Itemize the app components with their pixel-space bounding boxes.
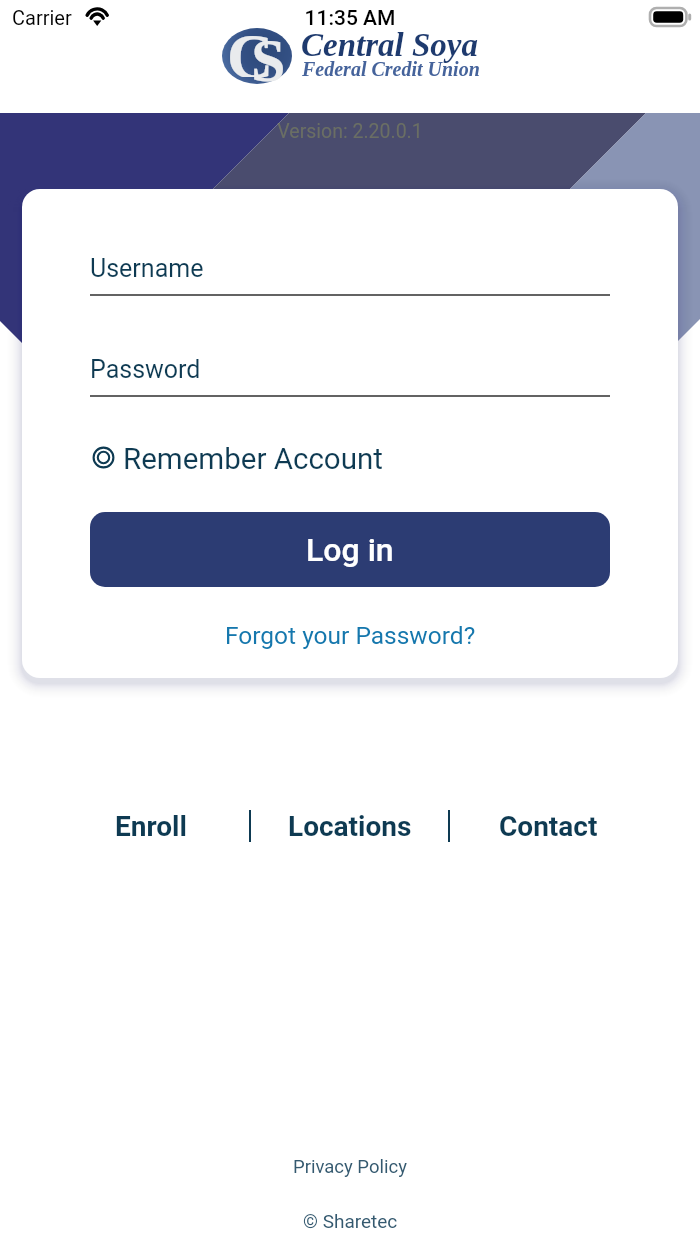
staticText: Enroll bbox=[115, 810, 187, 843]
button[interactable]: Remember Account bbox=[91, 442, 376, 477]
staticText: Version: 2.20.0.1 bbox=[0, 120, 700, 143]
staticText: Password bbox=[90, 355, 201, 384]
staticText: © Sharetec bbox=[303, 1210, 398, 1232]
staticText: Remember Account bbox=[123, 442, 383, 477]
staticText: Log in bbox=[306, 531, 394, 569]
staticText: Locations bbox=[288, 810, 412, 843]
other: Wi-Fi bbox=[82, 5, 113, 28]
button[interactable]: Password bbox=[90, 355, 610, 397]
staticText: Contact bbox=[499, 810, 598, 843]
staticText: Forgot your Password? bbox=[225, 621, 476, 650]
staticText: Privacy Policy bbox=[293, 1156, 407, 1178]
staticText: C bbox=[227, 21, 274, 77]
button[interactable]: Log in bbox=[90, 512, 610, 587]
button[interactable]: Forgot your Password? bbox=[217, 617, 484, 654]
staticText: Username bbox=[90, 254, 204, 283]
button[interactable]: Contact bbox=[450, 808, 647, 844]
button[interactable]: Enroll bbox=[53, 808, 249, 844]
button[interactable]: Locations bbox=[251, 808, 448, 844]
staticText: 11:35 AM bbox=[0, 6, 700, 31]
other: Battery full bbox=[650, 8, 692, 26]
staticText: Carrier bbox=[12, 6, 72, 29]
button[interactable]: Privacy Policy bbox=[285, 1154, 415, 1180]
button[interactable]: Username bbox=[90, 254, 610, 296]
staticText: Central Soya bbox=[301, 27, 478, 64]
staticText: S bbox=[251, 26, 286, 82]
staticText: Federal Credit Union bbox=[302, 58, 480, 80]
